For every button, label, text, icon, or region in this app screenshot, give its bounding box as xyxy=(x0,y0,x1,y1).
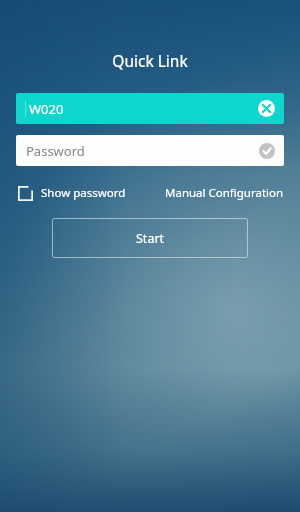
button[interactable]: Manual Configuration xyxy=(165,183,284,203)
staticText: W020 xyxy=(29,100,64,118)
staticText: Show password xyxy=(41,185,126,201)
button[interactable]: Password xyxy=(16,135,284,166)
button[interactable]: Confirm password xyxy=(259,143,275,159)
staticText: Quick Link xyxy=(0,50,300,71)
button[interactable]: Start xyxy=(52,218,248,258)
button[interactable]: Clear text xyxy=(258,100,275,117)
button[interactable]: Show password xyxy=(18,183,126,203)
staticText: Start xyxy=(136,230,165,247)
staticText: Password xyxy=(26,142,85,160)
button[interactable]: W020 xyxy=(16,93,284,124)
